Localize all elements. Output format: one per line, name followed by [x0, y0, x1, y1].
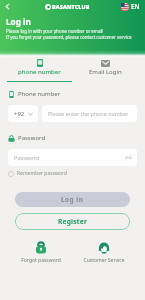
staticText: If you forget your password, please cont…	[6, 34, 132, 40]
button[interactable]: Customer Service	[72, 242, 136, 264]
staticText: Please enter the phone number	[48, 110, 129, 117]
staticText: EN	[131, 2, 140, 11]
staticText: Password	[14, 154, 40, 162]
staticText: Password	[18, 134, 46, 142]
staticText: Register	[58, 217, 88, 226]
staticText: Please log in with your phone number or …	[6, 28, 103, 34]
staticText: +92	[14, 110, 25, 118]
staticText: Phone number	[18, 90, 61, 98]
staticText: Customer Service	[83, 257, 125, 264]
staticText: BASANTCLUB	[52, 3, 90, 10]
button[interactable]: Remember password	[8, 170, 68, 177]
button[interactable]: Language EN	[121, 2, 140, 11]
button[interactable]: Log in	[15, 192, 130, 207]
button[interactable]: Email Login	[72, 57, 138, 82]
button[interactable]: phone number	[7, 57, 72, 82]
button[interactable]: Please enter the phone number	[42, 105, 137, 122]
button[interactable]: +92	[8, 105, 38, 122]
staticText: Log in	[61, 195, 84, 204]
staticText: Email Login	[89, 68, 122, 76]
staticText: Remember password	[17, 170, 68, 177]
staticText: Forgot password	[21, 257, 61, 264]
button[interactable]: Forgot password	[9, 242, 72, 264]
button[interactable]: Register	[15, 213, 130, 230]
button[interactable]: Back	[0, 0, 14, 13]
staticText: Log in	[6, 16, 31, 27]
button[interactable]: Show password	[124, 153, 133, 162]
staticText: phone number	[18, 68, 61, 76]
button[interactable]: Password	[8, 149, 137, 166]
